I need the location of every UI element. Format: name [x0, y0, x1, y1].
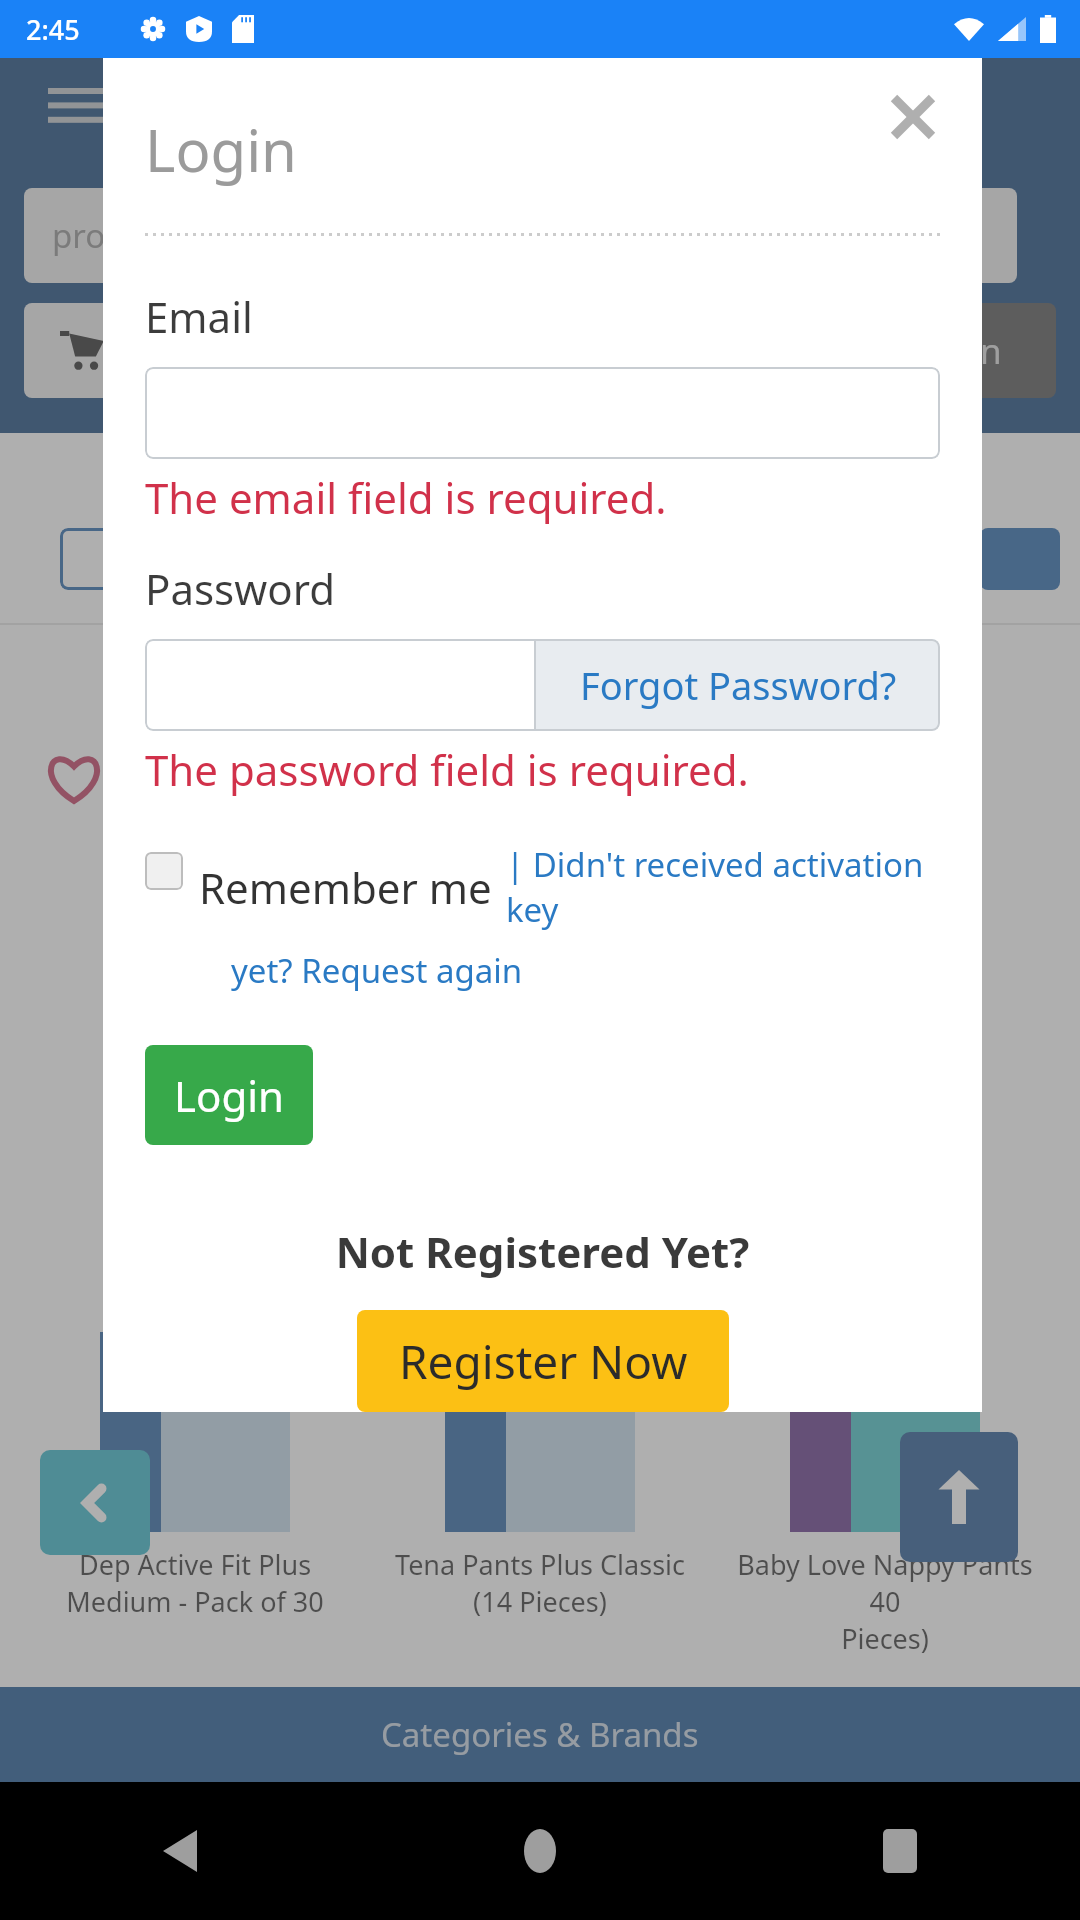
button[interactable]: | Didn't received activation key: [506, 842, 940, 932]
button[interactable]: Scroll to top: [900, 1432, 1018, 1562]
staticText: Password: [145, 560, 335, 617]
staticText: The password field is required.: [145, 741, 749, 798]
button[interactable]: Back: [143, 1814, 217, 1888]
button[interactable]: Remember me checkbox: [145, 852, 183, 890]
button[interactable]: Close: [874, 78, 952, 156]
staticText: Showing 1 to 12 of 30: [399, 445, 682, 483]
staticText: Email: [145, 288, 253, 345]
button[interactable]: Login: [145, 1045, 313, 1145]
button[interactable]: Register Now: [357, 1310, 729, 1412]
button[interactable]: Forgot Password?: [536, 639, 940, 731]
staticText: Baby Love Nappy Pants 40 Pieces): [735, 1546, 1035, 1657]
button[interactable]: Recent apps: [863, 1814, 937, 1888]
staticText: Dep Active Fit Plus Medium - Pack of 30: [66, 1546, 324, 1620]
staticText: Register Now: [399, 1330, 688, 1393]
button[interactable]: [145, 639, 534, 731]
staticText: Not Registered Yet?: [103, 1223, 982, 1280]
staticText: Forgot Password?: [580, 659, 897, 711]
button[interactable]: Home: [503, 1814, 577, 1888]
staticText: Login: [910, 327, 1002, 375]
button[interactable]: yet? Request again: [231, 948, 523, 993]
staticText: product name: [52, 213, 271, 258]
staticText: Categories & Brands: [381, 1712, 699, 1757]
staticText: Login: [145, 110, 297, 189]
staticText: Login: [174, 1067, 285, 1124]
staticText: 2:45: [26, 11, 80, 48]
button[interactable]: Remember me: [199, 859, 492, 916]
staticText: Tena Pants Plus Classic (14 Pieces): [395, 1546, 685, 1620]
staticText: The email field is required.: [145, 469, 667, 526]
button[interactable]: Previous: [40, 1450, 150, 1555]
button[interactable]: [145, 367, 940, 459]
